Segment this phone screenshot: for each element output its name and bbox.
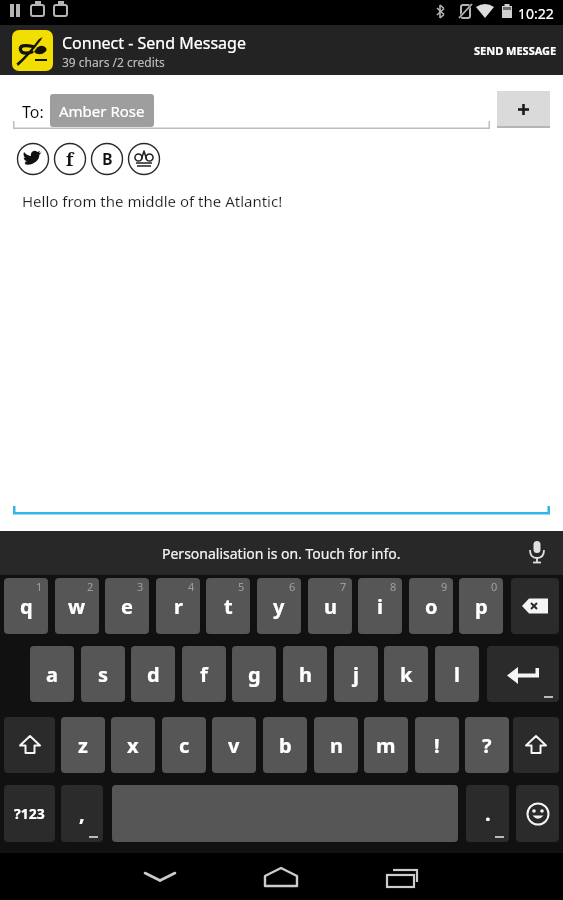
staticText: n (330, 732, 343, 759)
button[interactable]: m (364, 717, 408, 773)
button[interactable]: w (55, 578, 99, 634)
staticText: ! (434, 732, 440, 759)
button[interactable]: B (90, 142, 124, 176)
button[interactable]: v (212, 717, 256, 773)
staticText: r (174, 593, 183, 620)
button[interactable]: y (257, 578, 301, 634)
staticText: To: (22, 101, 44, 123)
button[interactable]: t (206, 578, 250, 634)
button[interactable]: b (263, 717, 307, 773)
button[interactable] (4, 717, 55, 773)
button[interactable]: s (81, 646, 125, 702)
button[interactable]: j (334, 646, 378, 702)
staticText: 8 (390, 579, 397, 594)
staticText: 6 (289, 579, 296, 594)
staticText: , (79, 800, 85, 827)
staticText: q (20, 593, 33, 620)
button[interactable]: q (4, 578, 48, 634)
button[interactable] (130, 853, 190, 900)
staticText: 5 (238, 579, 245, 594)
staticText: ? (482, 732, 492, 759)
button[interactable]: p (459, 578, 503, 634)
staticText: e (121, 593, 133, 620)
button[interactable]: ! (415, 717, 459, 773)
button[interactable]: Amber Rose (50, 94, 154, 127)
staticText: u (324, 593, 337, 620)
staticText: 39 chars /2 credits (62, 54, 165, 70)
button[interactable] (372, 853, 432, 900)
staticText: j (353, 661, 359, 688)
staticText: 3 (137, 579, 144, 594)
staticText: f (66, 147, 74, 172)
staticText: p (475, 593, 488, 620)
button[interactable]: g (232, 646, 276, 702)
button[interactable]: u (308, 578, 352, 634)
button[interactable] (12, 30, 53, 71)
staticText: f (200, 661, 208, 688)
staticText: Personalisation is on. Touch for info. (162, 544, 401, 563)
staticText: k (400, 661, 413, 688)
button[interactable]: c (162, 717, 206, 773)
button[interactable] (497, 91, 550, 128)
staticText: 9 (441, 579, 448, 594)
button[interactable]: SEND MESSAGE (474, 25, 557, 75)
button[interactable]: , (61, 785, 103, 842)
button[interactable] (16, 142, 50, 176)
staticText: 7 (340, 579, 347, 594)
button[interactable]: e (105, 578, 149, 634)
staticText: g (248, 661, 261, 688)
button[interactable]: n (314, 717, 358, 773)
staticText: i (377, 593, 383, 620)
button[interactable]: l (435, 646, 479, 702)
staticText: x (127, 732, 139, 759)
button[interactable]: d (131, 646, 175, 702)
button[interactable]: . (466, 785, 509, 842)
staticText: c (179, 732, 190, 759)
staticText: d (147, 661, 160, 688)
button[interactable]: f (53, 142, 87, 176)
button[interactable]: ? (465, 717, 509, 773)
staticText: m (376, 732, 396, 759)
button[interactable]: o (409, 578, 453, 634)
staticText: v (228, 732, 240, 759)
button[interactable] (511, 578, 559, 634)
button[interactable] (516, 785, 559, 842)
button[interactable]: r (156, 578, 200, 634)
staticText: a (46, 661, 58, 688)
staticText: Amber Rose (59, 101, 145, 121)
staticText: 10:22 (518, 4, 554, 23)
staticText: 2 (87, 579, 94, 594)
staticText: o (425, 593, 438, 620)
staticText: z (78, 732, 88, 759)
staticText: ?123 (14, 804, 45, 823)
staticText: 1 (36, 579, 43, 594)
staticText: B (102, 148, 113, 170)
staticText: . (485, 800, 491, 827)
staticText: 0 (491, 579, 498, 594)
staticText: y (273, 593, 285, 620)
button[interactable]: x (111, 717, 155, 773)
button[interactable] (251, 853, 311, 900)
staticText: s (98, 661, 109, 688)
button[interactable]: i (358, 578, 402, 634)
button[interactable]: a (30, 646, 74, 702)
staticText: Connect - Send Message (62, 32, 246, 54)
button[interactable]: f (182, 646, 226, 702)
staticText: w (68, 593, 86, 620)
staticText: b (279, 732, 292, 759)
button[interactable]: ?123 (4, 785, 55, 842)
button[interactable] (487, 646, 559, 702)
staticText: 4 (188, 579, 195, 594)
button[interactable]: z (61, 717, 105, 773)
staticText: Hello from the middle of the Atlantic! (22, 191, 283, 211)
staticText: l (454, 661, 460, 688)
button[interactable]: k (384, 646, 428, 702)
staticText: SEND MESSAGE (474, 43, 557, 58)
button[interactable] (127, 142, 161, 176)
staticText: t (224, 593, 233, 620)
button[interactable] (513, 717, 559, 773)
button[interactable]: h (283, 646, 327, 702)
staticText: h (299, 661, 312, 688)
